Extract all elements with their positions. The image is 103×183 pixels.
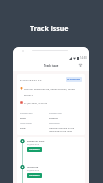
staticText: 22 June 2019 bbox=[27, 143, 40, 146]
button[interactable]: Inspected bbox=[20, 165, 85, 183]
staticText: Inspected bbox=[27, 165, 39, 168]
staticText: Pothole bbox=[49, 116, 58, 119]
staticText: Old Fish Fisherman Rd, Kapan Kudson, Ker… bbox=[24, 87, 82, 97]
staticText: 23 June 2019 bbox=[27, 169, 40, 172]
staticText: IN PROGRESS bbox=[67, 78, 81, 81]
button[interactable]: Raised an issue bbox=[20, 139, 85, 165]
staticText: General pothole in the rightside of the … bbox=[49, 126, 82, 133]
staticText: PWD bbox=[20, 126, 26, 129]
staticText: Completed bbox=[29, 174, 40, 177]
button[interactable]: # 4 5 6 7 8 9 0 1 2 3 bbox=[17, 74, 85, 85]
staticText: 14:30 bbox=[80, 56, 87, 60]
button[interactable]: Filter bbox=[77, 62, 83, 68]
staticText: Road bbox=[20, 116, 26, 119]
staticText: Problem with bbox=[20, 112, 33, 115]
staticText: Track issue bbox=[44, 64, 59, 68]
staticText: Completed bbox=[29, 148, 40, 151]
staticText: Track issue bbox=[30, 24, 69, 34]
staticText: Raised an issue bbox=[27, 139, 45, 142]
staticText: 21 Jan 2020, 3:44 PM bbox=[24, 101, 48, 104]
staticText: Problem type bbox=[49, 112, 62, 115]
staticText: Description bbox=[49, 122, 60, 125]
staticText: Asset Owner bbox=[20, 122, 32, 125]
staticText: # 4 5 6 7 8 9 0 1 2 3 bbox=[20, 78, 42, 81]
